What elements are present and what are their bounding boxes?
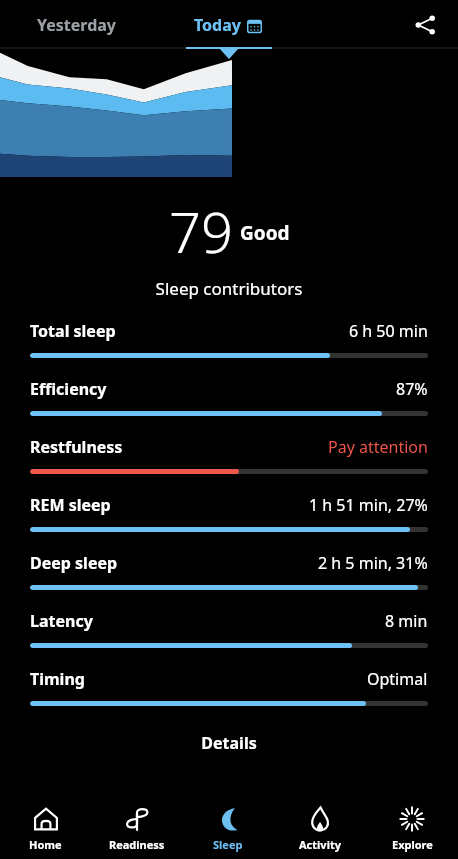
button[interactable]: Readiness bbox=[91, 799, 182, 859]
staticText: Deep sleep bbox=[30, 552, 118, 574]
button[interactable]: Timing bbox=[0, 668, 458, 726]
staticText: Total sleep bbox=[30, 320, 116, 342]
staticText: REM sleep bbox=[30, 494, 111, 516]
button[interactable]: Sleep bbox=[182, 799, 274, 859]
staticText: 79 bbox=[169, 193, 233, 255]
button[interactable]: Efficiency bbox=[0, 378, 458, 436]
button[interactable]: Share bbox=[398, 0, 452, 50]
button[interactable]: Home bbox=[0, 799, 91, 859]
staticText: Readiness bbox=[109, 837, 165, 852]
staticText: Explore bbox=[392, 837, 433, 852]
button[interactable]: Restfulness bbox=[0, 436, 458, 494]
staticText: Pay attention bbox=[328, 436, 428, 458]
staticText: Yesterday bbox=[37, 14, 116, 36]
staticText: 87% bbox=[396, 378, 428, 400]
staticText: 6 h 50 min bbox=[349, 320, 428, 342]
staticText: Home bbox=[29, 837, 62, 852]
staticText: Sleep contributors bbox=[0, 277, 458, 300]
staticText: 1 h 51 min, 27% bbox=[309, 494, 428, 516]
staticText: Today bbox=[194, 14, 241, 36]
button[interactable]: Activity bbox=[274, 799, 366, 859]
staticText: Timing bbox=[30, 668, 85, 690]
staticText: 8 min bbox=[385, 610, 428, 632]
staticText: Sleep bbox=[213, 837, 243, 852]
button[interactable]: 79 bbox=[0, 193, 458, 255]
button[interactable]: Yesterday bbox=[0, 0, 152, 50]
staticText: Optimal bbox=[367, 668, 428, 690]
button[interactable]: Total sleep bbox=[0, 320, 458, 378]
button[interactable]: Today bbox=[152, 0, 304, 50]
staticText: 2 h 5 min, 31% bbox=[318, 552, 428, 574]
staticText: Efficiency bbox=[30, 378, 107, 400]
button[interactable] bbox=[0, 50, 458, 183]
staticText: Latency bbox=[30, 610, 93, 632]
button[interactable]: Deep sleep bbox=[0, 552, 458, 610]
staticText: Activity bbox=[299, 837, 341, 852]
staticText: Details bbox=[0, 732, 458, 754]
button[interactable]: REM sleep bbox=[0, 494, 458, 552]
button[interactable]: Explore bbox=[366, 799, 458, 859]
staticText: Restfulness bbox=[30, 436, 123, 458]
button[interactable]: Latency bbox=[0, 610, 458, 668]
staticText: Good bbox=[240, 220, 290, 246]
